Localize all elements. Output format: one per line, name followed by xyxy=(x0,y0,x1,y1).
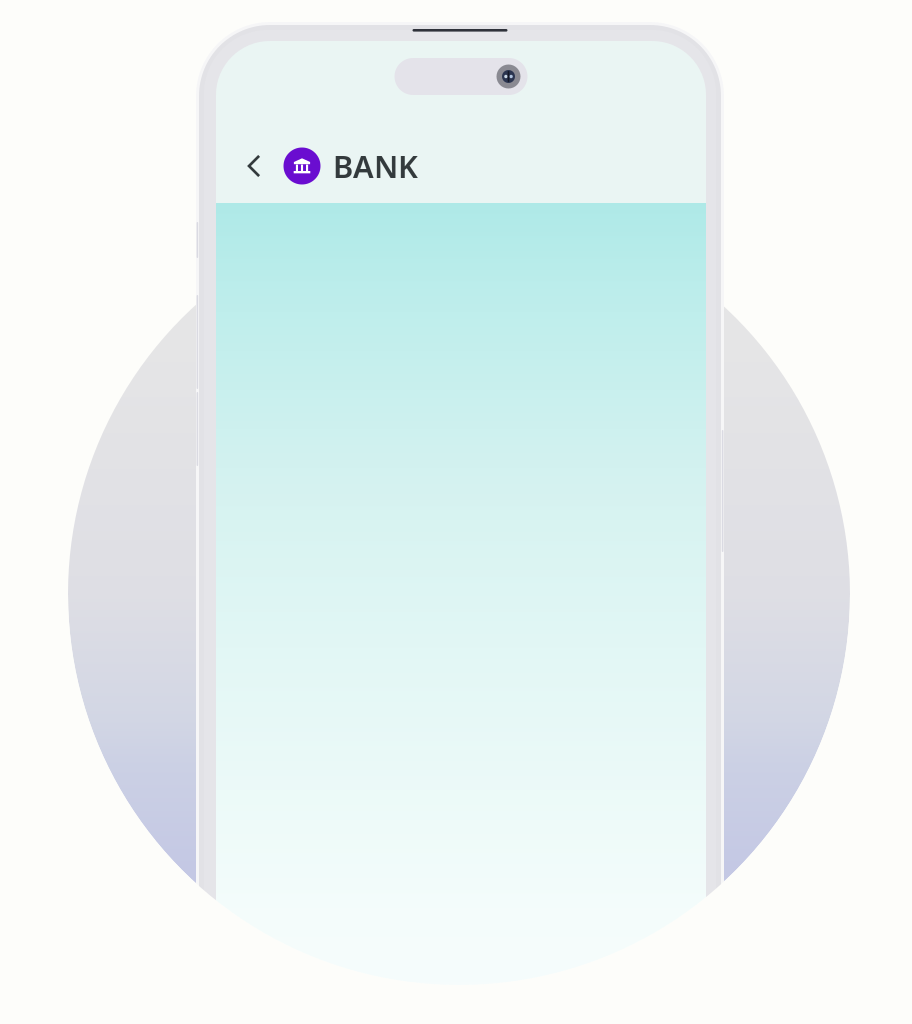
button[interactable]: Back xyxy=(232,144,276,188)
staticText: BANK xyxy=(333,146,418,186)
